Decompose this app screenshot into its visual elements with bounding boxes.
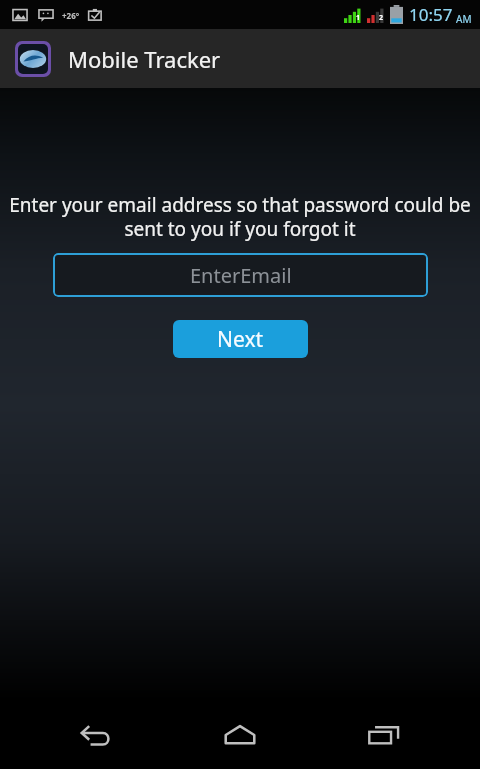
button[interactable]: Recent apps xyxy=(336,705,432,765)
staticText: +26° xyxy=(62,10,80,21)
staticText: 2 xyxy=(379,13,384,23)
button[interactable]: Next xyxy=(173,320,308,358)
staticText: 1 xyxy=(356,13,361,23)
staticText: AM xyxy=(456,12,472,26)
staticText: 10:57 xyxy=(409,3,453,26)
button[interactable]: Back xyxy=(48,705,144,765)
staticText: Next xyxy=(217,325,264,354)
staticText: EnterEmail xyxy=(190,262,292,289)
staticText: Mobile Tracker xyxy=(68,44,221,74)
button[interactable]: Home xyxy=(192,705,288,765)
staticText: Enter your email address so that passwor… xyxy=(8,192,472,241)
button[interactable]: EnterEmail xyxy=(53,253,428,297)
